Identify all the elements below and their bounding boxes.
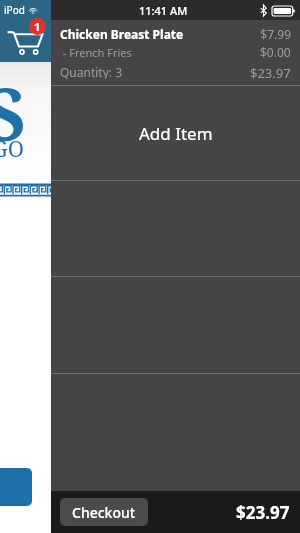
button[interactable]: Shopping cart, 1 item	[6, 22, 44, 56]
staticText: Checkout	[72, 503, 136, 522]
staticText: - French Fries	[60, 45, 260, 60]
staticText: Add Item	[139, 122, 213, 145]
staticText: S	[0, 64, 26, 162]
staticText: Chicken Breast Plate	[60, 26, 260, 42]
button[interactable]: Chicken Breast Plate	[51, 20, 300, 85]
staticText: 11:41 AM	[139, 3, 188, 18]
staticText: $0.00	[260, 44, 291, 60]
staticText: Quantity: 3	[60, 64, 250, 79]
staticText: $7.99	[260, 26, 291, 42]
staticText: 1	[34, 19, 41, 34]
staticText: iPod	[4, 3, 25, 17]
button[interactable]: Checkout	[60, 498, 148, 526]
button[interactable]: Menu action	[0, 468, 32, 506]
staticText: $23.97	[250, 64, 291, 79]
staticText: $23.97	[236, 501, 290, 524]
staticText: GO	[0, 133, 25, 163]
button[interactable]: Add Item	[51, 86, 300, 180]
